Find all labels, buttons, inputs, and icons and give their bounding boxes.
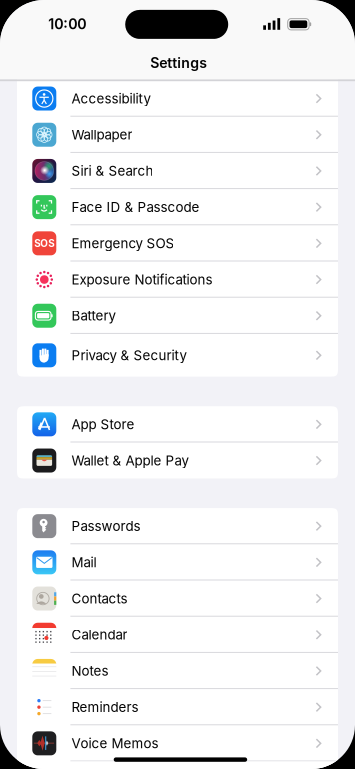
- button[interactable]: Siri & Search: [17, 153, 338, 189]
- staticText: Exposure Notifications: [71, 271, 212, 288]
- staticText: Mail: [71, 554, 96, 570]
- staticText: 10:00: [48, 15, 86, 33]
- button[interactable]: Face ID & Passcode: [17, 189, 338, 225]
- button[interactable]: Accessibility: [17, 80, 338, 117]
- staticText: App Store: [71, 416, 134, 432]
- staticText: Voice Memos: [71, 735, 158, 751]
- staticText: SOS: [34, 237, 54, 249]
- staticText: Emergency SOS: [71, 235, 174, 251]
- staticText: Settings: [150, 54, 207, 71]
- button[interactable]: Reminders: [17, 689, 338, 725]
- button[interactable]: Privacy & Security: [17, 334, 338, 377]
- button[interactable]: Wallpaper: [17, 117, 338, 153]
- button[interactable]: App Store: [17, 406, 338, 442]
- button[interactable]: Voice Memos: [17, 725, 338, 761]
- staticText: Reminders: [71, 699, 138, 715]
- staticText: Calendar: [71, 627, 127, 643]
- staticText: Contacts: [71, 590, 127, 607]
- button[interactable]: Passwords: [17, 508, 338, 544]
- button[interactable]: SOS: [17, 225, 338, 261]
- staticText: Wallet & Apple Pay: [71, 452, 188, 469]
- staticText: Privacy & Security: [71, 347, 186, 363]
- staticText: Face ID & Passcode: [71, 199, 199, 215]
- staticText: Battery: [71, 308, 115, 324]
- button[interactable]: Battery: [17, 298, 338, 334]
- button[interactable]: Calendar: [17, 617, 338, 653]
- button[interactable]: Wallet & Apple Pay: [17, 442, 338, 479]
- staticText: Accessibility: [71, 90, 150, 107]
- staticText: Notes: [71, 663, 108, 679]
- staticText: Siri & Search: [71, 163, 153, 179]
- staticText: Passwords: [71, 518, 140, 534]
- staticText: Wallpaper: [71, 127, 132, 143]
- button[interactable]: Mail: [17, 544, 338, 580]
- button[interactable]: Exposure Notifications: [17, 261, 338, 298]
- button[interactable]: Contacts: [17, 580, 338, 617]
- button[interactable]: Notes: [17, 653, 338, 689]
